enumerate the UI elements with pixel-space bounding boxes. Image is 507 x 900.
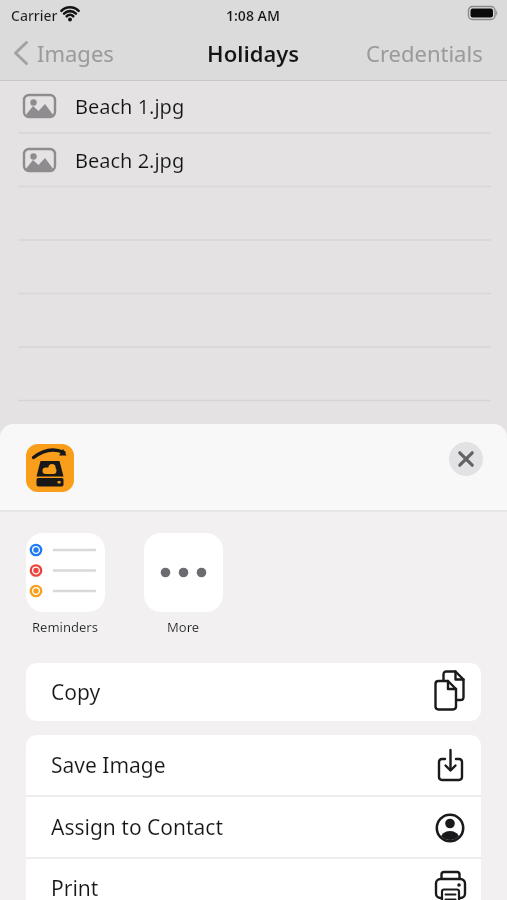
button[interactable] bbox=[26, 858, 481, 900]
button[interactable] bbox=[26, 533, 105, 612]
button[interactable] bbox=[26, 796, 481, 858]
button[interactable] bbox=[370, 37, 485, 69]
button[interactable] bbox=[449, 442, 483, 476]
staticText: Credentials bbox=[366, 38, 483, 68]
button[interactable] bbox=[26, 444, 74, 492]
button[interactable] bbox=[10, 37, 120, 69]
staticText: 1:08 AM bbox=[226, 6, 280, 25]
staticText: Holidays bbox=[207, 38, 300, 68]
staticText: Carrier bbox=[11, 6, 58, 25]
staticText: Assign to Contact bbox=[51, 813, 224, 842]
staticText: Images bbox=[37, 38, 114, 68]
button[interactable] bbox=[144, 533, 223, 612]
staticText: Copy bbox=[51, 678, 101, 707]
staticText: Beach 1.jpg bbox=[75, 93, 185, 120]
button[interactable] bbox=[0, 134, 507, 186]
staticText: More bbox=[167, 618, 200, 636]
staticText: Reminders bbox=[32, 618, 98, 636]
staticText: Save Image bbox=[51, 751, 166, 780]
button[interactable] bbox=[0, 81, 507, 133]
staticText: Beach 2.jpg bbox=[75, 147, 185, 174]
staticText: Print bbox=[51, 874, 99, 900]
button[interactable] bbox=[26, 663, 481, 721]
button[interactable] bbox=[26, 735, 481, 796]
